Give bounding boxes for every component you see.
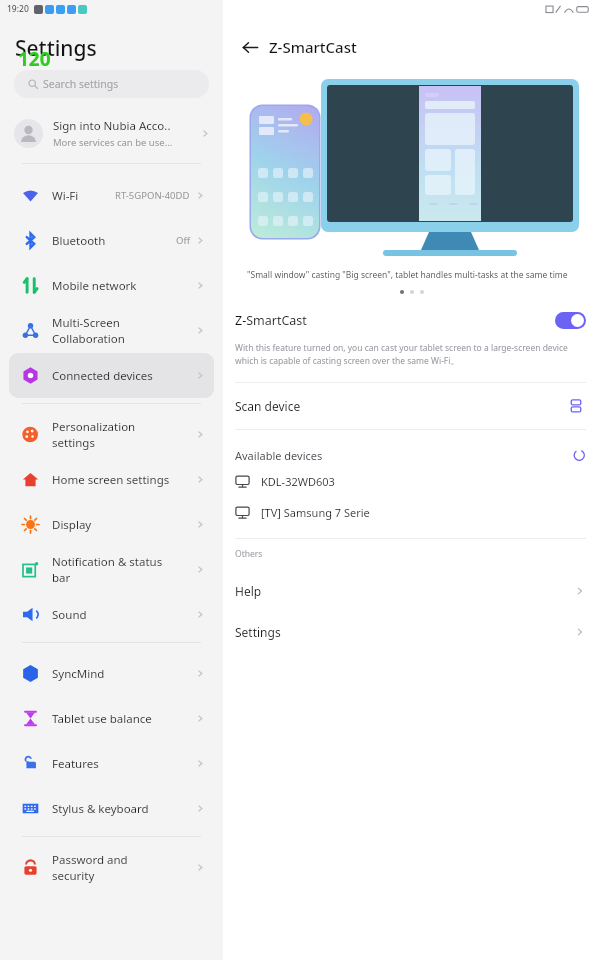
staticText: Available devices <box>235 448 323 463</box>
button[interactable]: Sign into Nubia Acco.. <box>0 110 223 156</box>
staticText: Password and <box>52 852 128 868</box>
staticText: Connected devices <box>52 368 153 384</box>
button[interactable]: Password and <box>9 845 214 890</box>
staticText: Off <box>176 234 190 247</box>
staticText: Sound <box>52 607 87 623</box>
button[interactable]: Notification & status <box>9 547 214 592</box>
staticText: 120 <box>18 46 51 72</box>
staticText: Bluetooth <box>52 233 106 249</box>
button[interactable]: Settings <box>223 611 600 652</box>
staticText: Others <box>235 548 263 560</box>
button[interactable]: [TV] Samsung 7 Serie <box>223 497 600 528</box>
button[interactable]: Wi-Fi <box>9 173 214 218</box>
button[interactable]: Stylus & keyboard <box>9 786 214 831</box>
button[interactable]: Tablet use balance <box>9 696 214 741</box>
staticText: Features <box>52 756 99 772</box>
staticText: More services can be use... <box>53 136 173 149</box>
button[interactable]: Home screen settings <box>9 457 214 502</box>
button[interactable]: Mobile network <box>9 263 214 308</box>
staticText: "Small window" casting "Big screen", tab… <box>247 269 600 281</box>
staticText: 19:20 <box>7 3 29 15</box>
staticText: Display <box>52 517 92 533</box>
button[interactable]: Multi-Screen <box>9 308 214 353</box>
staticText: Scan device <box>235 398 301 414</box>
staticText: Personalization <box>52 419 136 435</box>
button[interactable]: Personalization <box>9 412 214 457</box>
button[interactable]: Features <box>9 741 214 786</box>
staticText: Settings <box>235 624 281 640</box>
staticText: Tablet use balance <box>52 711 152 727</box>
staticText: security <box>52 868 95 884</box>
button[interactable]: Bluetooth <box>9 218 214 263</box>
staticText: Settings <box>15 34 97 63</box>
button[interactable]: Back <box>237 34 263 60</box>
button[interactable]: Scan device <box>223 383 600 429</box>
staticText: Search settings <box>43 77 119 91</box>
staticText: Sign into Nubia Acco.. <box>53 118 171 134</box>
button[interactable]: KDL-32WD603 <box>223 466 600 497</box>
staticText: Home screen settings <box>52 472 170 488</box>
staticText: With this feature turned on, you can cas… <box>235 342 568 366</box>
button[interactable]: Z-SmartCast <box>223 307 600 333</box>
staticText: KDL-32WD603 <box>261 474 335 489</box>
staticText: Wi-Fi <box>52 188 79 204</box>
staticText: Z-SmartCast <box>235 312 307 329</box>
staticText: Z-SmartCast <box>269 37 357 57</box>
staticText: Mobile network <box>52 278 137 294</box>
staticText: SyncMind <box>52 666 105 682</box>
other: Scan <box>566 396 586 416</box>
staticText: Multi-Screen <box>52 315 120 331</box>
button[interactable]: Connected devices <box>9 353 214 398</box>
button[interactable]: SyncMind <box>9 651 214 696</box>
staticText: Help <box>235 583 262 599</box>
staticText: Collaboration <box>52 331 125 347</box>
staticText: Stylus & keyboard <box>52 801 149 817</box>
button[interactable]: Sound <box>9 592 214 637</box>
button[interactable]: Search settings <box>14 70 209 98</box>
staticText: [TV] Samsung 7 Serie <box>261 505 370 520</box>
staticText: RT-5GPON-40DD <box>115 189 190 202</box>
button[interactable]: Help <box>223 570 600 611</box>
staticText: settings <box>52 435 95 451</box>
button[interactable]: Display <box>9 502 214 547</box>
staticText: bar <box>52 570 71 586</box>
other: Refresh <box>573 449 586 462</box>
staticText: Notification & status <box>52 554 163 570</box>
